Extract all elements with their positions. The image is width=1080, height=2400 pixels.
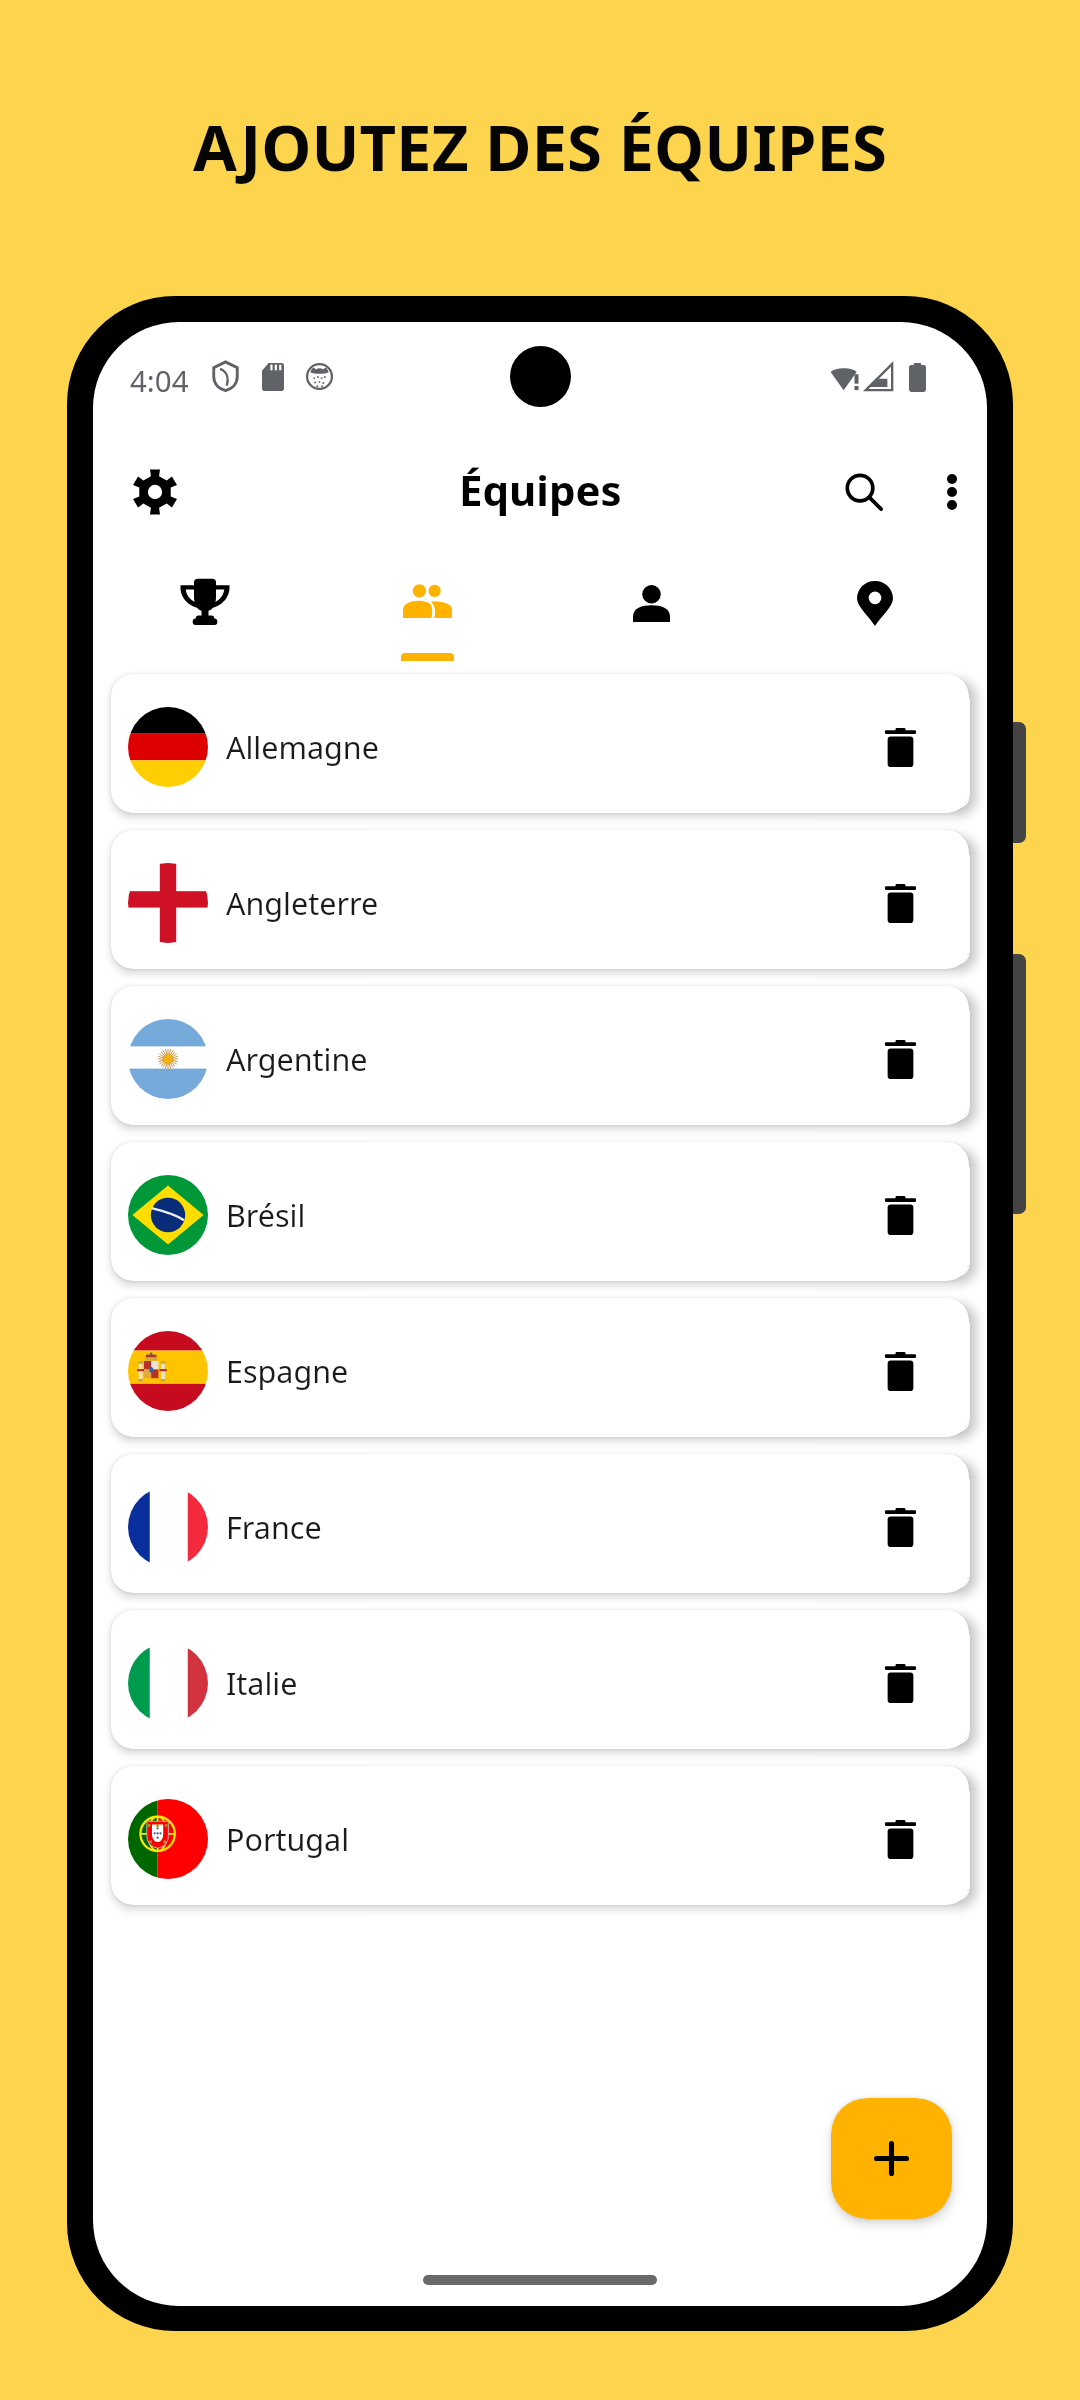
button[interactable]: Angleterre — [111, 830, 969, 969]
staticText: Brésil — [226, 1194, 306, 1236]
staticText: Équipes — [459, 461, 622, 518]
staticText: Allemagne — [226, 726, 379, 768]
button[interactable]: Espagne — [111, 1298, 969, 1437]
button[interactable]: Supprimer France — [860, 1487, 940, 1567]
button[interactable]: Portugal — [111, 1766, 969, 1905]
button[interactable]: Rechercher — [816, 444, 912, 540]
button[interactable]: Italie — [111, 1610, 969, 1749]
button[interactable]: Supprimer Allemagne — [860, 707, 940, 787]
button[interactable]: Argentine — [111, 986, 969, 1125]
staticText: Espagne — [226, 1350, 349, 1392]
button[interactable]: Supprimer Brésil — [860, 1175, 940, 1255]
button[interactable]: Supprimer Portugal — [860, 1799, 940, 1879]
staticText: Angleterre — [226, 882, 379, 924]
button[interactable]: Brésil — [111, 1142, 969, 1281]
staticText: France — [226, 1506, 322, 1548]
staticText: Portugal — [226, 1818, 350, 1860]
button[interactable]: Plus d'options — [904, 444, 987, 540]
button[interactable]: Supprimer Argentine — [860, 1019, 940, 1099]
button[interactable]: Ajouter une équipe — [831, 2098, 952, 2219]
button[interactable]: Joueurs — [539, 548, 763, 662]
button[interactable]: France — [111, 1454, 969, 1593]
staticText: Italie — [226, 1662, 298, 1704]
button[interactable]: Supprimer Espagne — [860, 1331, 940, 1411]
button[interactable]: Allemagne — [111, 674, 969, 813]
button[interactable]: Tournois — [93, 548, 316, 662]
staticText: AJOUTEZ DES ÉQUIPES — [193, 103, 887, 189]
button[interactable]: Supprimer Italie — [860, 1643, 940, 1723]
button[interactable]: Paramètres — [107, 444, 203, 540]
button[interactable]: Supprimer Angleterre — [860, 863, 940, 943]
button[interactable]: Lieux — [763, 548, 987, 662]
staticText: Argentine — [226, 1038, 368, 1080]
staticText: 4:04 — [130, 360, 189, 400]
button[interactable]: Équipes — [316, 548, 539, 662]
